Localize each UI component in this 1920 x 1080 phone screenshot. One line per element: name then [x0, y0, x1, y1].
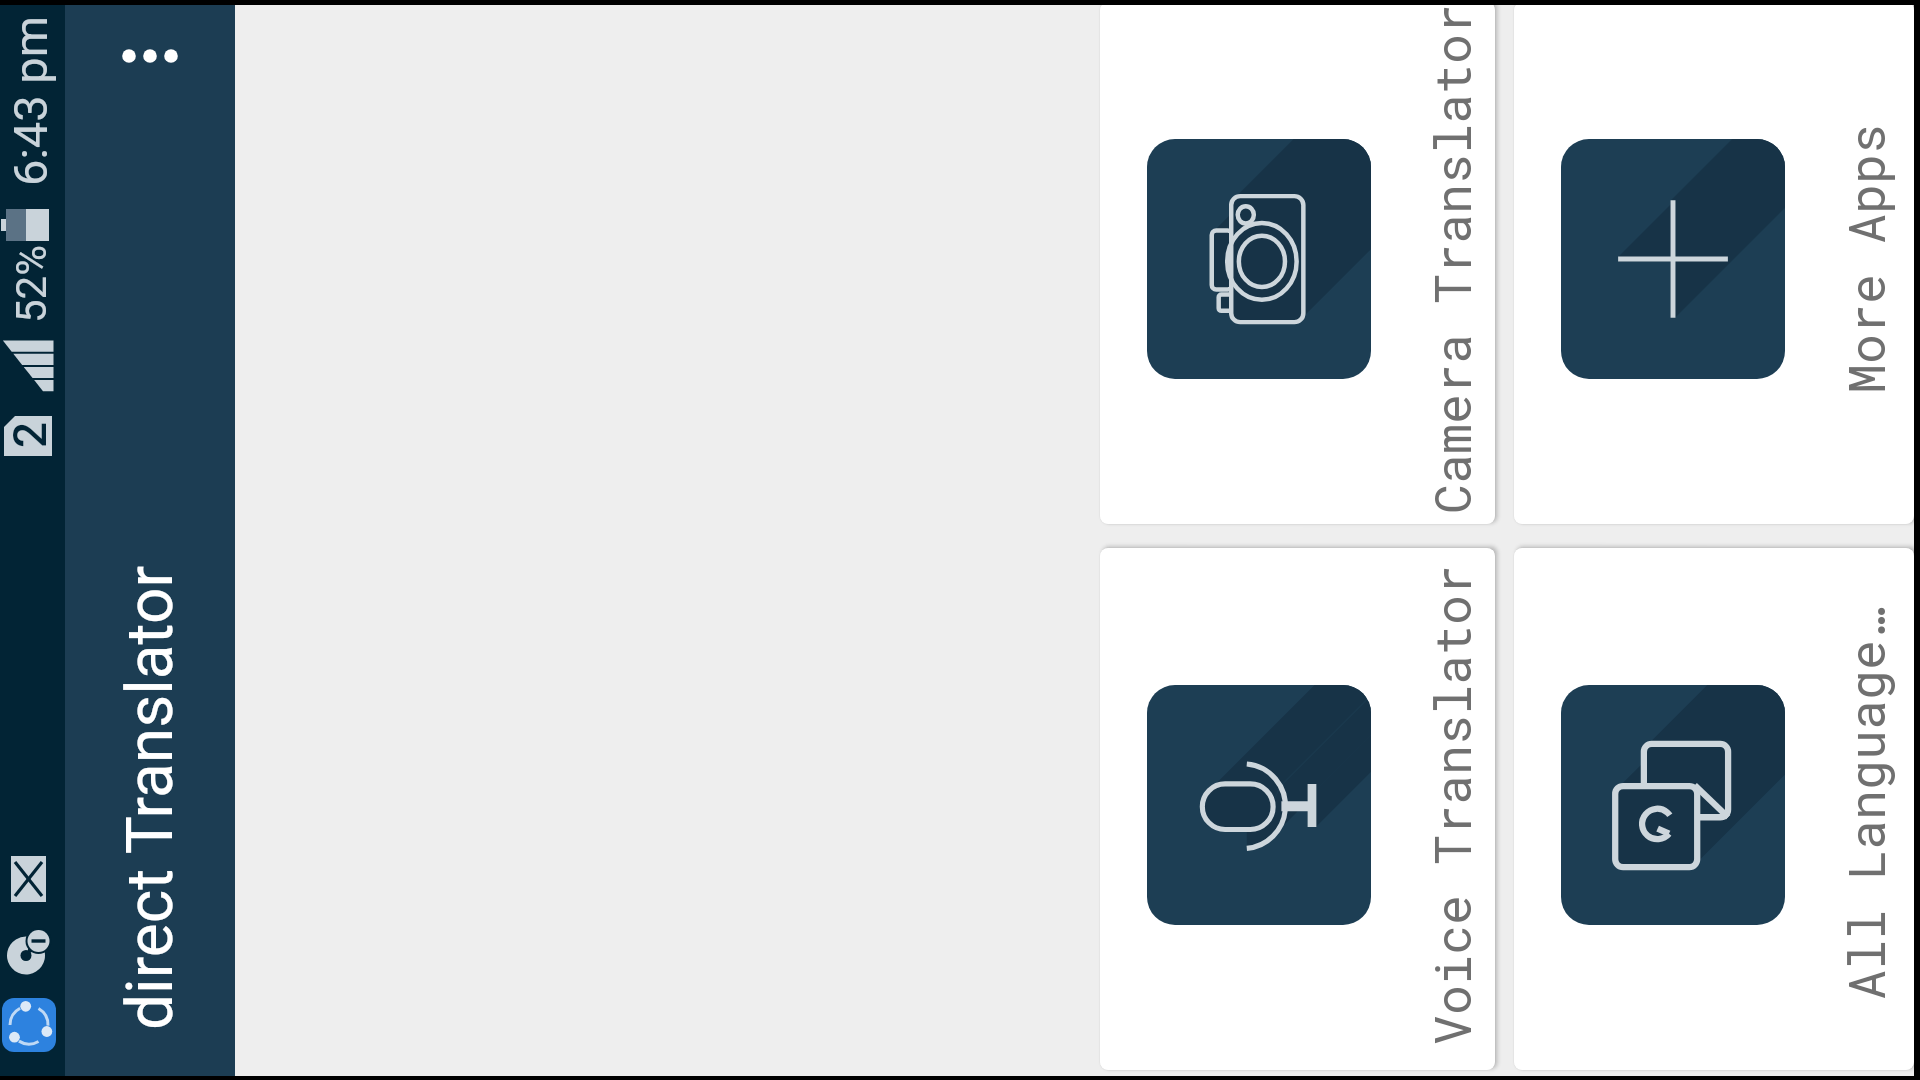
staticText: Camera Translator — [1419, 3, 1485, 514]
staticText: 52% — [7, 245, 56, 323]
staticText: 6:43 pm — [3, 16, 58, 186]
button[interactable]: More options — [65, 8, 235, 104]
staticText: More Apps — [1833, 123, 1899, 394]
button[interactable]: Voice Translator — [1100, 548, 1495, 1070]
staticText: direct Translator — [113, 565, 188, 1030]
button[interactable]: More Apps — [1514, 2, 1914, 524]
button[interactable]: All Language… — [1514, 548, 1914, 1070]
staticText: 2 — [3, 421, 57, 448]
staticText: All Language… — [1833, 609, 1899, 1000]
staticText: Voice Translator — [1419, 564, 1485, 1045]
button[interactable]: Camera Translator — [1100, 2, 1495, 524]
